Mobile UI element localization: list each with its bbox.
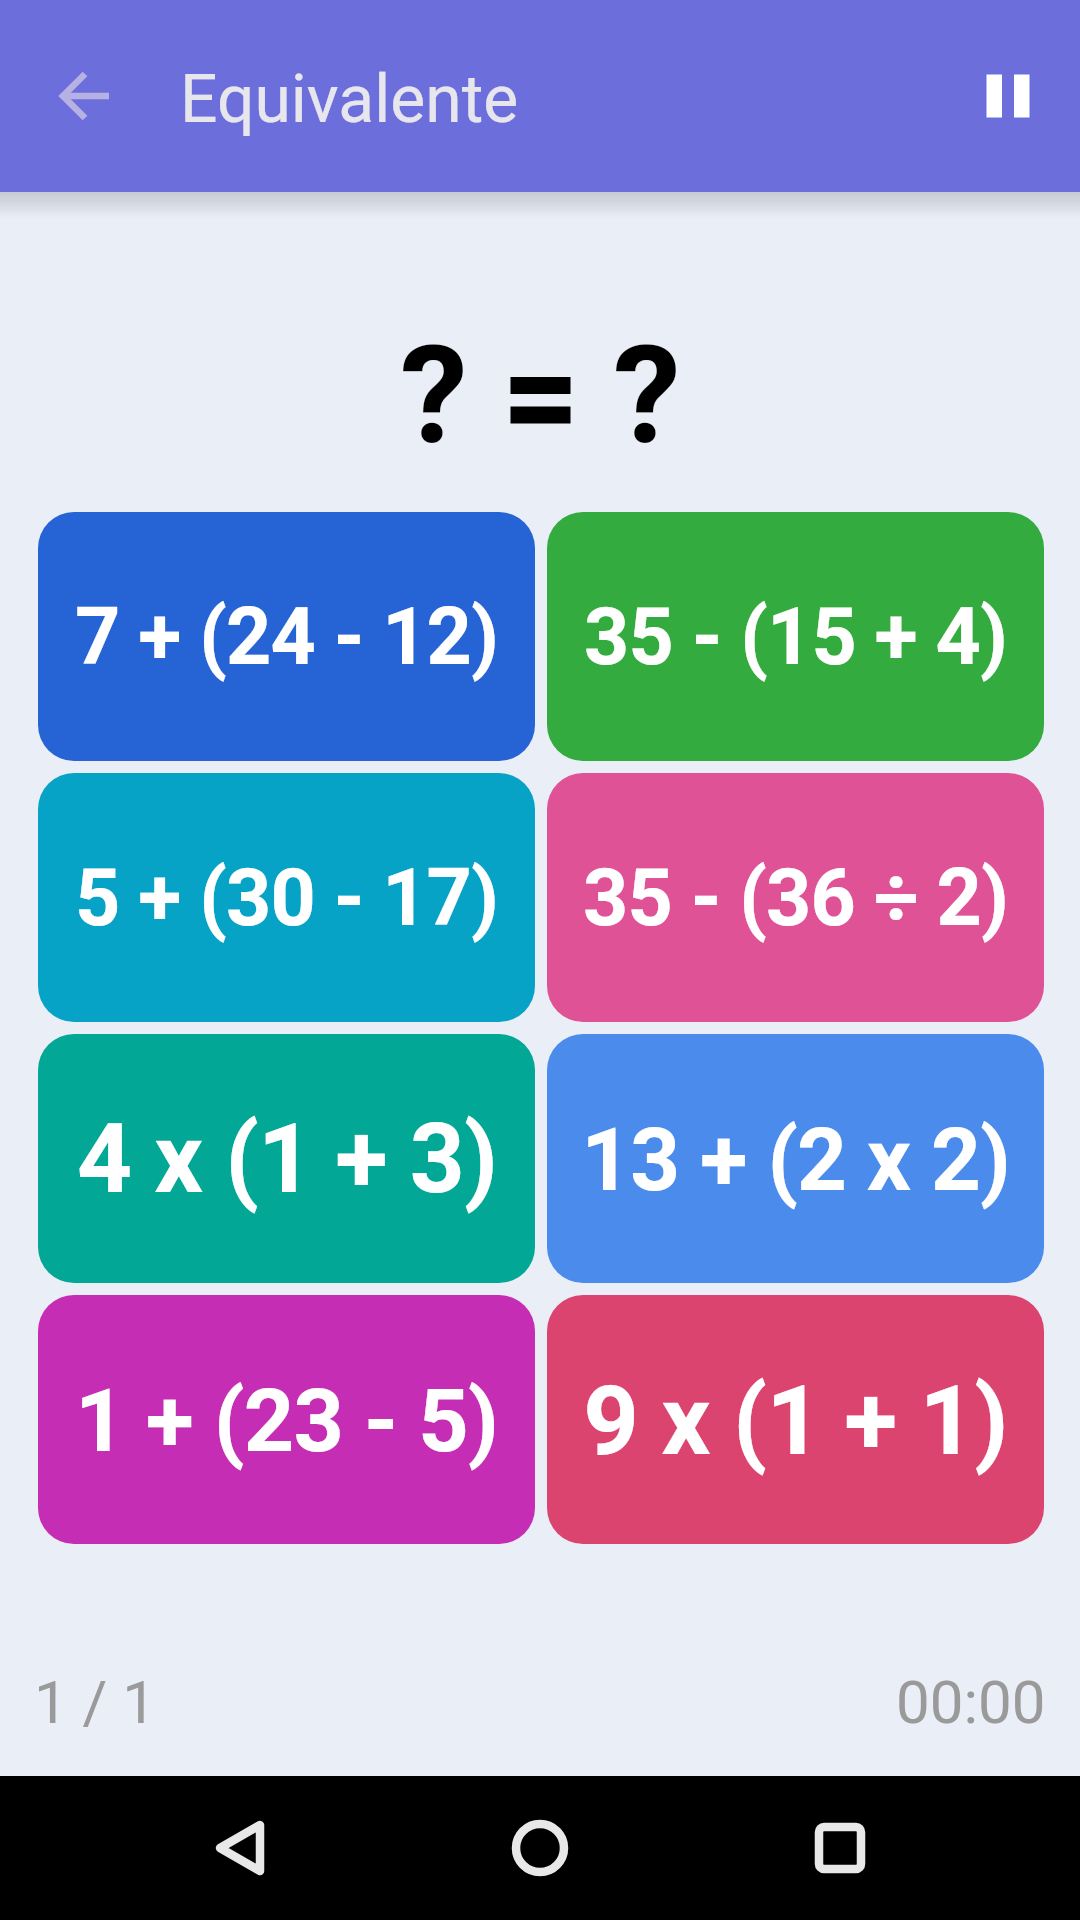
staticText: 5 + (30 - 17)	[75, 852, 498, 945]
staticText: 13 + (2 x 2)	[581, 1109, 1010, 1211]
button[interactable]: 13 + (2 x 2)	[547, 1034, 1044, 1283]
staticText: 1 + (23 - 5)	[75, 1369, 498, 1472]
staticText: ?	[400, 316, 468, 475]
button[interactable]: 9 x (1 + 1)	[547, 1295, 1044, 1544]
button[interactable]: 35 - (15 + 4)	[547, 512, 1044, 761]
staticText: 00:00	[896, 1667, 1046, 1737]
staticText: ?	[613, 316, 681, 475]
button[interactable]: 4 x (1 + 3)	[38, 1034, 535, 1283]
staticText: 35 - (36 ÷ 2)	[583, 852, 1008, 945]
button[interactable]: Recents	[792, 1800, 888, 1896]
button[interactable]: 35 - (36 ÷ 2)	[547, 773, 1044, 1022]
staticText: Equivalente	[180, 61, 519, 138]
button[interactable]: Back	[36, 48, 132, 144]
button[interactable]: Pause	[960, 48, 1056, 144]
button[interactable]: 1 + (23 - 5)	[38, 1295, 535, 1544]
staticText: 4 x (1 + 3)	[77, 1103, 497, 1216]
button[interactable]: Home	[492, 1800, 588, 1896]
staticText: 7 + (24 - 12)	[75, 591, 498, 684]
button[interactable]: Back	[192, 1800, 288, 1896]
staticText: 1 / 1	[34, 1667, 156, 1737]
button[interactable]: 7 + (24 - 12)	[38, 512, 535, 761]
button[interactable]: 5 + (30 - 17)	[38, 773, 535, 1022]
staticText: 35 - (15 + 4)	[584, 591, 1007, 684]
staticText: 9 x (1 + 1)	[583, 1364, 1008, 1478]
